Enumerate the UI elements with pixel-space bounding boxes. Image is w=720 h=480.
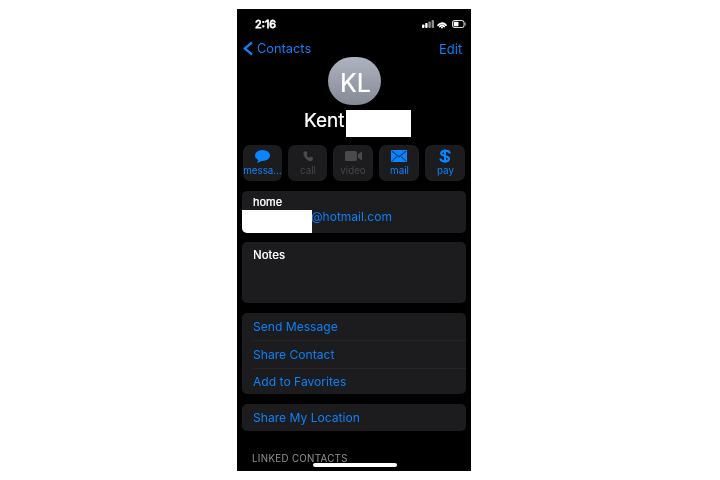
button[interactable]: home: [242, 191, 466, 233]
button[interactable]: Send Message: [242, 313, 466, 341]
button[interactable]: call: [288, 145, 327, 181]
staticText: Send Message: [253, 319, 338, 334]
staticText: Share Contact: [253, 347, 335, 362]
staticText: video: [340, 165, 366, 177]
staticText: Kent: [304, 109, 345, 132]
button[interactable]: Notes: [242, 242, 466, 303]
button[interactable]: messa…: [243, 145, 282, 181]
staticText: KL: [340, 68, 371, 98]
staticText: 2:16: [255, 17, 277, 30]
button[interactable]: video: [333, 145, 373, 181]
staticText: messa…: [243, 165, 282, 177]
staticText: Edit: [439, 41, 463, 57]
button[interactable]: Add to Favorites: [242, 369, 466, 394]
staticText: home: [253, 195, 283, 208]
staticText: call: [300, 165, 316, 177]
staticText: Share My Location: [253, 410, 360, 425]
staticText: @hotmail.com: [311, 209, 392, 224]
staticText: LINKED CONTACTS: [252, 453, 348, 465]
button[interactable]: Share My Location: [242, 404, 466, 431]
staticText: Add to Favorites: [253, 374, 347, 389]
button[interactable]: Share Contact: [242, 341, 466, 369]
staticText: mail: [390, 165, 409, 177]
button[interactable]: mail: [379, 145, 419, 181]
button[interactable]: Edit: [433, 38, 471, 60]
staticText: Notes: [253, 248, 285, 262]
staticText: pay: [437, 165, 454, 177]
button[interactable]: Contacts: [239, 38, 320, 59]
staticText: Contacts: [257, 41, 312, 56]
button[interactable]: pay: [425, 145, 465, 181]
